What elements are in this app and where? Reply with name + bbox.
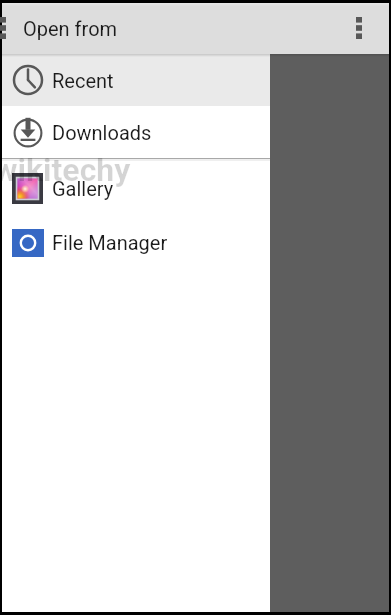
staticText: wikitechy	[0, 151, 131, 189]
staticText: Downloads	[52, 121, 152, 144]
staticText: File Manager	[52, 231, 168, 254]
staticText: Open from	[23, 17, 118, 40]
button[interactable]: File Manager	[2, 216, 270, 269]
staticText: Gallery	[52, 177, 114, 200]
button[interactable]: More options	[346, 6, 372, 50]
button[interactable]: Gallery	[2, 161, 270, 216]
staticText: Recent	[52, 69, 114, 92]
button[interactable]: Recent	[2, 54, 270, 106]
button[interactable]: Downloads	[2, 106, 270, 158]
button[interactable]: More options	[0, 8, 7, 48]
